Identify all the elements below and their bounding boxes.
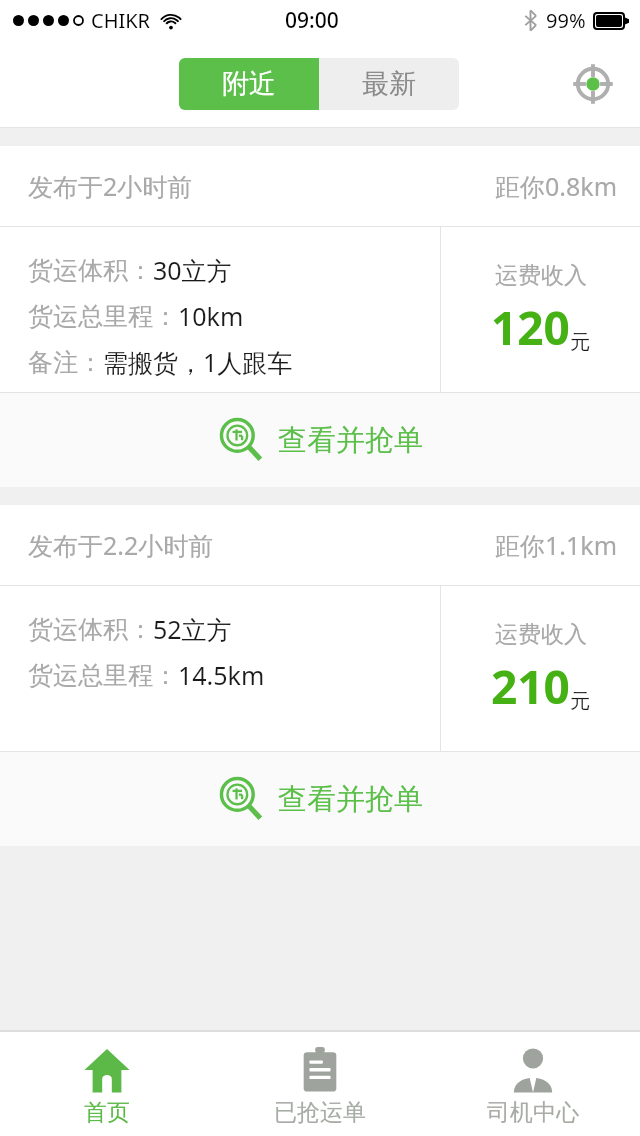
staticText: 210 [491, 655, 570, 718]
staticText: 货运总里程： [28, 301, 178, 332]
staticText: 52立方 [153, 612, 232, 646]
staticText: 99% [546, 7, 586, 34]
staticText: 需搬货，1人跟车 [103, 345, 293, 379]
staticText: 发布于2.2小时前 [28, 528, 214, 562]
staticText: 附近 [222, 67, 276, 101]
button[interactable]: 已抢运单 [213, 1032, 426, 1136]
button[interactable]: 司机中心 [426, 1032, 639, 1136]
button[interactable]: 查看并抢单 [0, 393, 640, 487]
staticText: 司机中心 [487, 1098, 579, 1127]
staticText: 运费收入 [495, 620, 587, 649]
button[interactable]: 附近 [179, 58, 319, 110]
staticText: 查看并抢单 [278, 781, 423, 818]
button[interactable]: Locate me [568, 59, 618, 109]
staticText: 09:00 [285, 6, 339, 35]
staticText: 最新 [362, 67, 416, 101]
staticText: 发布于2小时前 [28, 169, 193, 203]
staticText: 货运总里程： [28, 660, 178, 691]
staticText: 元 [570, 689, 590, 714]
staticText: 元 [570, 330, 590, 355]
staticText: 货运体积： [28, 255, 153, 286]
staticText: 备注： [28, 347, 103, 378]
button[interactable]: 最新 [319, 58, 459, 110]
staticText: 距你1.1km [495, 528, 618, 562]
staticText: 120 [491, 296, 570, 359]
staticText: 30立方 [153, 253, 232, 287]
staticText: 运费收入 [495, 261, 587, 290]
staticText: 14.5km [178, 658, 265, 692]
staticText: 距你0.8km [495, 169, 618, 203]
button[interactable]: 查看并抢单 [0, 752, 640, 846]
staticText: 查看并抢单 [278, 422, 423, 459]
staticText: 已抢运单 [274, 1098, 366, 1127]
button[interactable]: 首页 [0, 1032, 213, 1136]
staticText: 10km [178, 299, 244, 333]
staticText: 货运体积： [28, 614, 153, 645]
staticText: CHIKR [91, 7, 151, 34]
staticText: 首页 [84, 1098, 130, 1127]
